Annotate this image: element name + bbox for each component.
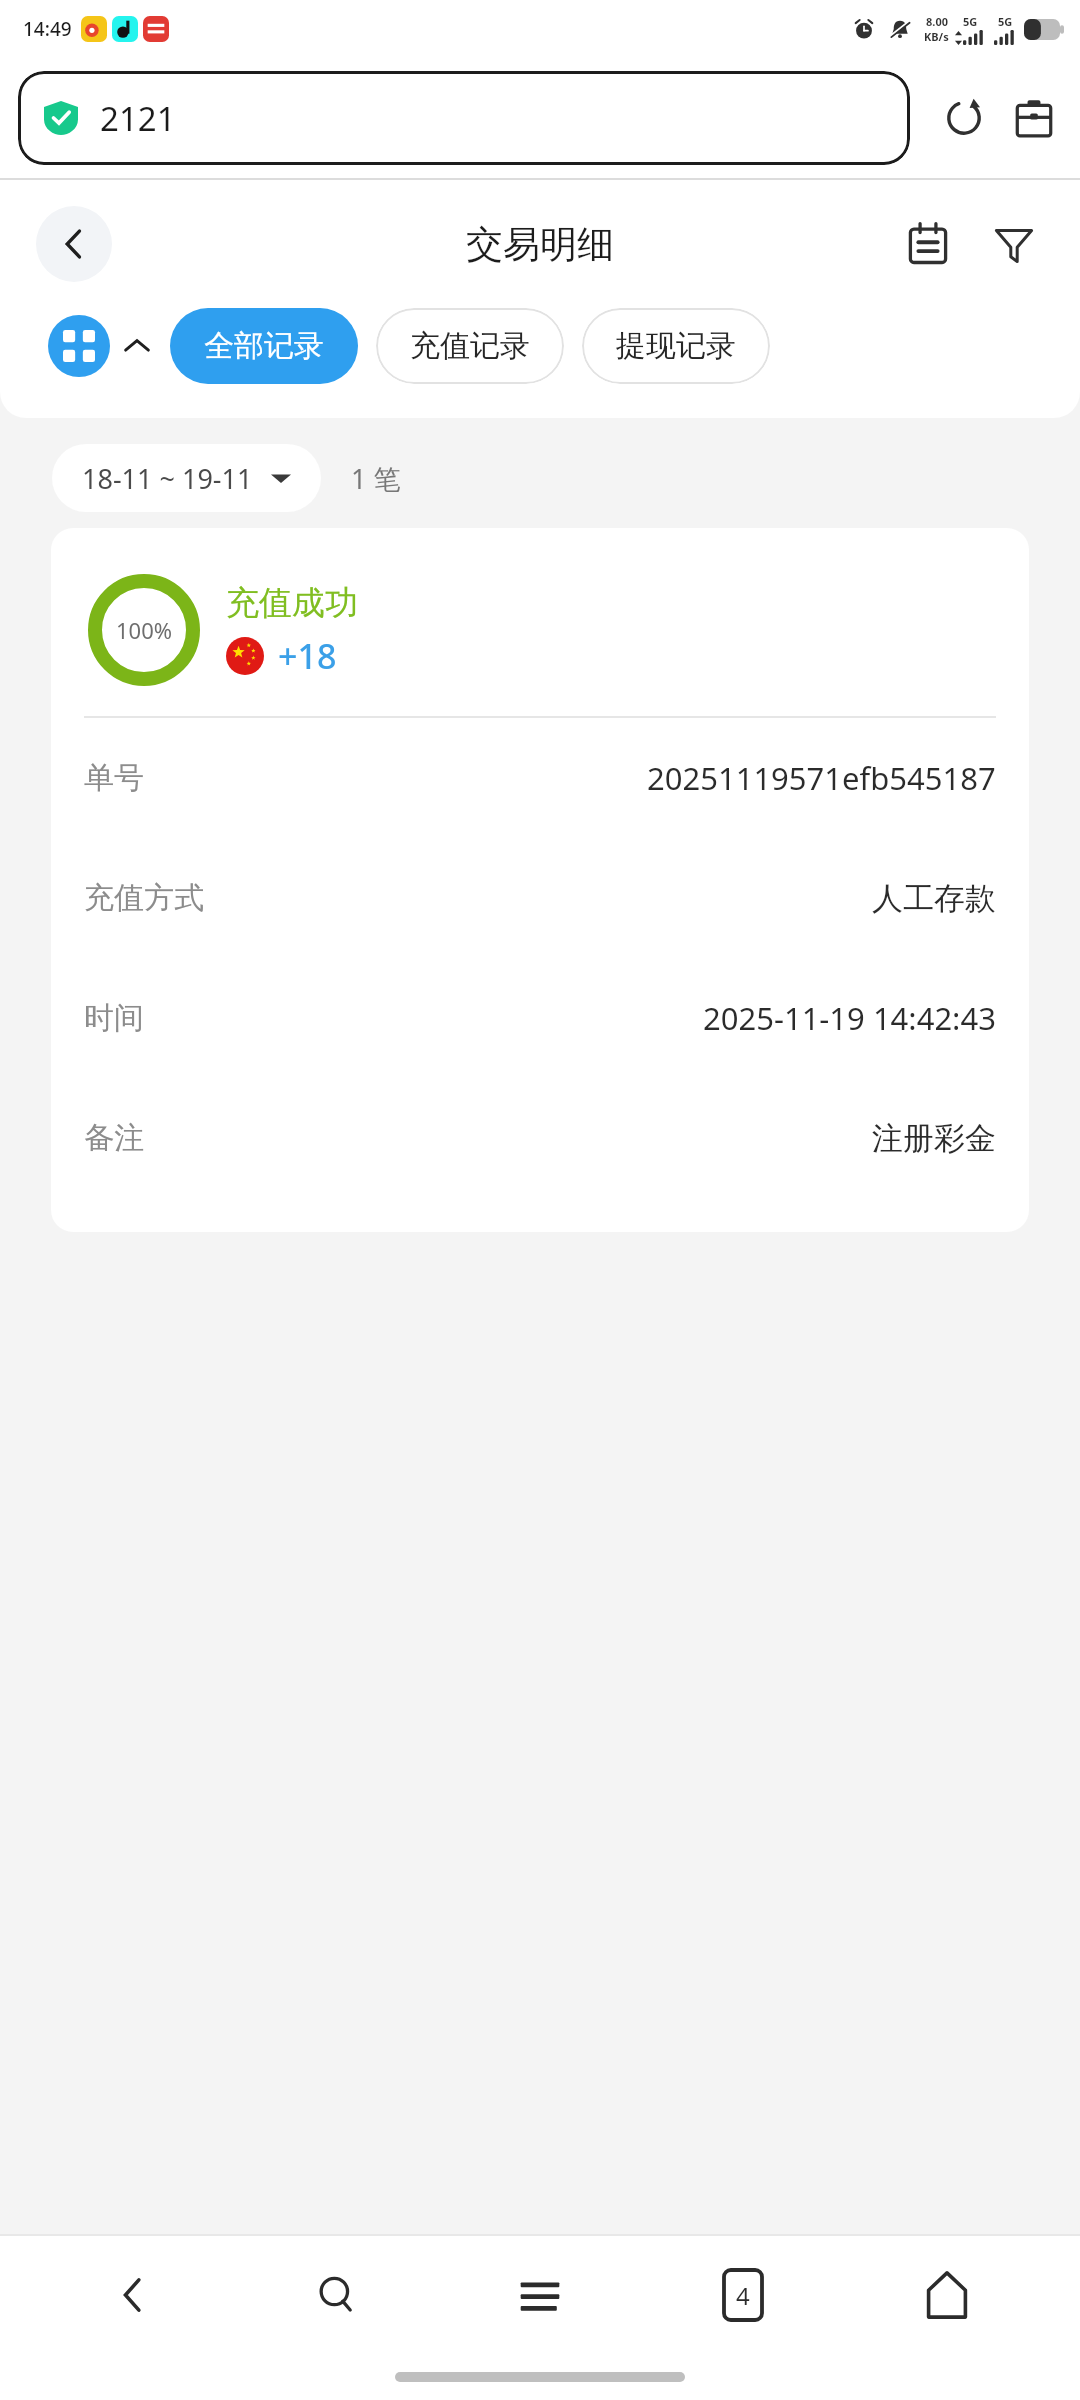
button[interactable]: Home bbox=[877, 2236, 1017, 2354]
button[interactable]: 充值记录 bbox=[376, 308, 564, 384]
staticText: 时间 bbox=[84, 999, 144, 1037]
button[interactable]: Menu bbox=[470, 2236, 610, 2354]
button[interactable]: Tools bbox=[1006, 90, 1062, 146]
staticText: +18 bbox=[278, 633, 337, 679]
button[interactable]: Categories bbox=[48, 315, 110, 377]
staticText: 100% bbox=[116, 615, 173, 645]
staticText: 充值成功 bbox=[226, 582, 358, 624]
staticText: 8.00 bbox=[926, 14, 948, 29]
staticText: 2025-11-19 14:42:43 bbox=[703, 997, 996, 1039]
staticText: 交易明细 bbox=[466, 221, 614, 268]
staticText: 18-11 ~ 19-11 bbox=[82, 460, 253, 497]
button[interactable]: 2121 bbox=[18, 71, 910, 165]
staticText: 充值记录 bbox=[410, 327, 530, 365]
staticText: 提现记录 bbox=[616, 327, 736, 365]
staticText: 5G bbox=[998, 14, 1013, 29]
button[interactable]: Calendar bbox=[896, 212, 960, 276]
staticText: 备注 bbox=[84, 1119, 144, 1157]
staticText: 单号 bbox=[84, 759, 144, 797]
button[interactable]: 100% bbox=[51, 528, 1029, 1232]
staticText: 20251119571efb545187 bbox=[647, 757, 996, 799]
button[interactable]: 18-11 ~ 19-11 bbox=[52, 444, 321, 512]
button[interactable]: Search bbox=[267, 2236, 407, 2354]
staticText: 注册彩金 bbox=[872, 1119, 996, 1158]
staticText: 1 笔 bbox=[351, 460, 401, 497]
button[interactable]: Back bbox=[36, 206, 112, 282]
staticText: KB/s bbox=[924, 29, 949, 44]
button[interactable]: Tabs bbox=[673, 2236, 813, 2354]
button[interactable]: Back bbox=[63, 2236, 203, 2354]
staticText: 5G bbox=[963, 14, 978, 29]
button[interactable]: Filter bbox=[982, 212, 1046, 276]
staticText: 4 bbox=[736, 2279, 750, 2312]
button[interactable]: 提现记录 bbox=[582, 308, 770, 384]
staticText: 人工存款 bbox=[872, 879, 996, 918]
staticText: 全部记录 bbox=[204, 327, 324, 365]
button[interactable]: Refresh bbox=[936, 90, 992, 146]
button[interactable]: 全部记录 bbox=[170, 308, 358, 384]
staticText: 充值方式 bbox=[84, 879, 204, 917]
staticText: 14:49 bbox=[23, 16, 72, 42]
staticText: 2121 bbox=[100, 96, 176, 141]
